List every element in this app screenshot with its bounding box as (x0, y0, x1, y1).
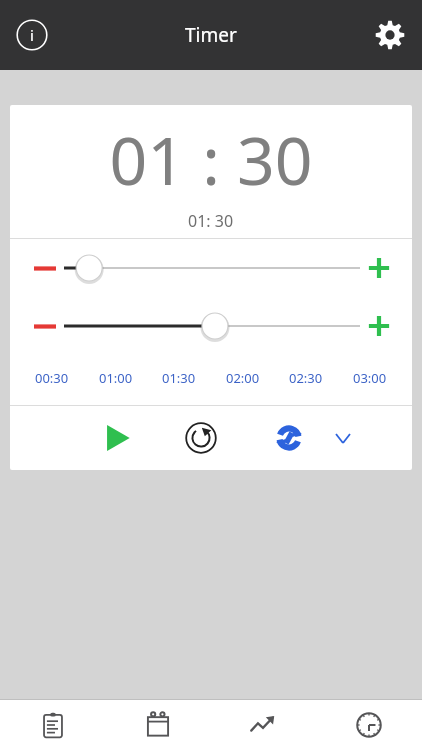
staticText: 01: 30 (188, 210, 234, 232)
staticText: 01:00 (99, 369, 133, 387)
button[interactable]: Adjust time (62, 253, 362, 283)
staticText: 01 : 30 (109, 114, 313, 204)
button[interactable]: 02:30 (286, 365, 326, 391)
staticText: 00:30 (35, 369, 69, 387)
button[interactable]: Adjust time (62, 311, 362, 341)
button[interactable]: Info (8, 11, 56, 59)
button[interactable]: Increase (362, 311, 396, 341)
button[interactable]: Notes (0, 700, 105, 750)
button[interactable]: More options (326, 421, 360, 455)
staticText: i (30, 25, 34, 45)
staticText: 02:00 (226, 369, 260, 387)
staticText: 02:30 (289, 369, 323, 387)
staticText: 03:00 (353, 369, 387, 387)
button[interactable]: 03:00 (350, 365, 390, 391)
button[interactable]: Timer (316, 700, 422, 750)
button[interactable]: Reset (177, 414, 225, 462)
button[interactable]: Start (94, 414, 142, 462)
button[interactable]: Decrease (28, 311, 62, 341)
button[interactable]: Settings (366, 11, 414, 59)
button[interactable]: Repeat (266, 415, 312, 461)
button[interactable]: Increase (362, 253, 396, 283)
staticText: 01:30 (162, 369, 196, 387)
button[interactable]: 01:30 (159, 365, 199, 391)
button[interactable]: 00:30 (32, 365, 72, 391)
staticText: Timer (185, 22, 237, 48)
button[interactable]: Trends (210, 700, 316, 750)
button[interactable]: Calendar (105, 700, 210, 750)
button[interactable]: 02:00 (223, 365, 263, 391)
button[interactable]: Decrease (28, 253, 62, 283)
button[interactable]: 01:00 (96, 365, 136, 391)
